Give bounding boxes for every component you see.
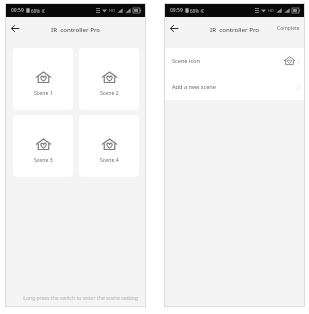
button[interactable]: Scene 2	[79, 48, 139, 110]
button[interactable]: Add a new scene	[165, 74, 304, 100]
staticText: Scene icon	[172, 57, 200, 65]
staticText: HD	[268, 8, 274, 13]
staticText: 68%	[190, 8, 199, 14]
staticText: Scene 4	[100, 156, 119, 163]
staticText: HD	[109, 8, 115, 13]
button[interactable]: Scene 1	[13, 48, 73, 110]
staticText: 09:59	[11, 7, 24, 14]
staticText: Complete	[277, 25, 300, 32]
staticText: IR controller Pro	[210, 25, 260, 33]
button[interactable]: Back	[7, 20, 23, 36]
button[interactable]: Scene icon	[165, 48, 304, 74]
staticText: Scene 3	[34, 156, 53, 163]
staticText: Scene 1	[34, 89, 53, 96]
staticText: Long press the switch to enter the scene…	[23, 295, 138, 302]
button[interactable]: Back	[166, 20, 182, 36]
staticText: 09:59	[170, 7, 183, 14]
button[interactable]: Scene 3	[13, 115, 73, 177]
staticText: IR controller Pro	[51, 25, 101, 33]
staticText: Add a new scene	[172, 83, 216, 91]
button[interactable]: Complete	[273, 20, 304, 37]
button[interactable]: Scene 4	[79, 115, 139, 177]
staticText: 68%	[31, 8, 40, 14]
staticText: Scene 2	[100, 89, 119, 96]
